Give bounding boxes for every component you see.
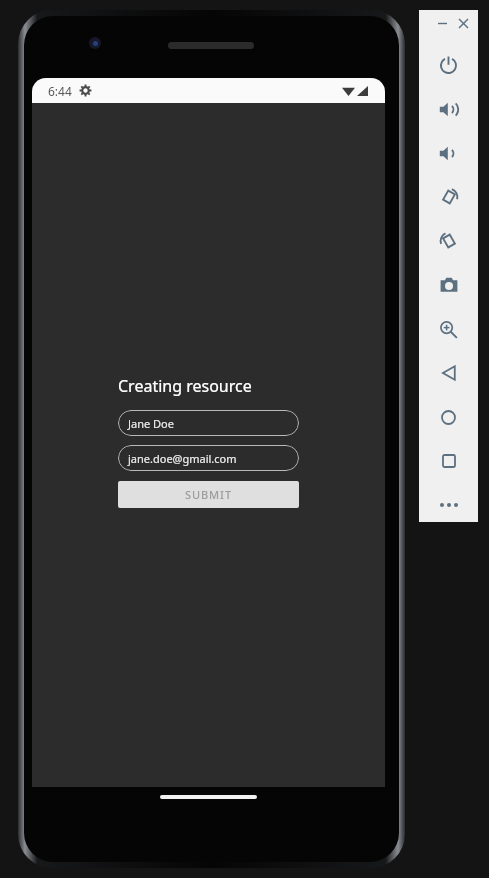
button[interactable]: Minimize	[433, 14, 451, 32]
button[interactable]: Volume up	[419, 87, 478, 131]
staticText: SUBMIT	[185, 487, 232, 502]
button[interactable]: Volume down	[419, 131, 478, 175]
button[interactable]: Home	[419, 395, 478, 439]
button[interactable]: Overview	[419, 439, 478, 483]
staticText: Creating resource	[118, 375, 252, 397]
button[interactable]: SUBMIT	[118, 481, 299, 508]
staticText: jane.doe@gmail.com	[128, 451, 237, 466]
button[interactable]: Rotate right	[419, 219, 478, 263]
button[interactable]: Screenshot	[419, 263, 478, 307]
staticText: 6:44	[48, 83, 72, 99]
button[interactable]: Back	[419, 351, 478, 395]
button[interactable]: Rotate left	[419, 175, 478, 219]
staticText: Jane Doe	[128, 416, 174, 431]
button[interactable]: Jane Doe	[118, 410, 299, 436]
button[interactable]: Close	[454, 14, 472, 32]
button[interactable]: jane.doe@gmail.com	[118, 445, 299, 471]
button[interactable]: More	[419, 483, 478, 527]
button[interactable]: Power	[419, 43, 478, 87]
button[interactable]: Zoom	[419, 307, 478, 351]
